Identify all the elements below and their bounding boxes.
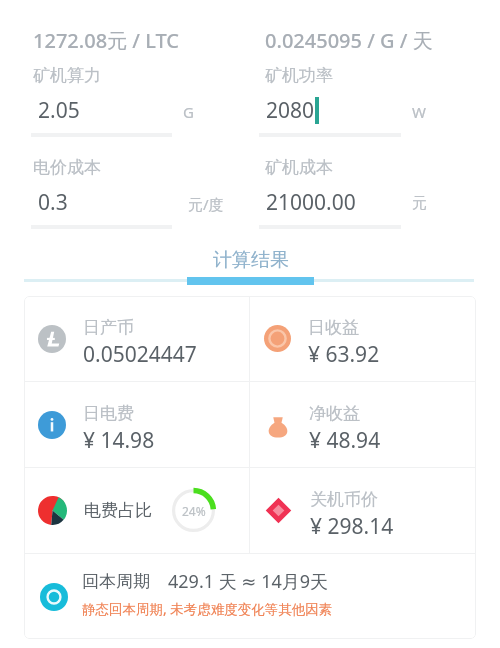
staticText: 429.1 天 ≈ 14月9天 (168, 569, 329, 594)
other: 电费占比 (38, 496, 67, 525)
button[interactable]: 回本周期 (24, 554, 476, 639)
staticText: 元/度 (188, 194, 224, 214)
staticText: ¥ 298.14 (310, 512, 394, 541)
staticText: 电费占比 (84, 500, 152, 521)
staticText: 0.3 (38, 188, 68, 217)
staticText: 0.0245095 / G / 天 (265, 27, 433, 54)
staticText: 计算结果 (213, 248, 289, 272)
other: 关机币价 (264, 496, 293, 525)
staticText: 24% (182, 503, 206, 519)
staticText: 矿机功率 (265, 65, 333, 86)
staticText: 电价成本 (33, 157, 101, 178)
staticText: ¥ 63.92 (308, 340, 380, 369)
staticText: 回本周期 (82, 571, 150, 592)
other: 日电费 (38, 411, 66, 439)
staticText: 关机币价 (310, 489, 378, 510)
staticText: 元 (412, 194, 427, 213)
other: 日收益 (264, 325, 291, 352)
staticText: 日电费 (83, 403, 134, 424)
staticText: 2.05 (38, 96, 80, 125)
staticText: 21000.00 (266, 188, 356, 217)
button[interactable]: 日收益 (250, 296, 476, 381)
staticText: 矿机算力 (33, 65, 101, 86)
staticText: 0.05024447 (83, 340, 197, 369)
staticText: ¥ 14.98 (83, 426, 155, 455)
staticText: G (183, 102, 194, 122)
staticText: 日收益 (308, 317, 359, 338)
staticText: 净收益 (309, 403, 360, 424)
button[interactable]: 关机币价 (250, 468, 476, 553)
other: 回本周期 (40, 583, 68, 611)
other: LTC (38, 325, 66, 353)
button[interactable]: LTC (24, 296, 249, 381)
staticText: W (412, 102, 426, 122)
button[interactable]: 电费占比 (24, 468, 249, 553)
staticText: 2080 (266, 96, 315, 125)
button[interactable]: 净收益 (250, 382, 476, 467)
staticText: 日产币 (83, 317, 134, 338)
staticText: 矿机成本 (265, 157, 333, 178)
staticText: ¥ 48.94 (309, 426, 381, 455)
staticText: 1272.08元 / LTC (33, 27, 179, 54)
staticText: 静态回本周期, 未考虑难度变化等其他因素 (82, 600, 333, 618)
other: 净收益 (264, 411, 292, 439)
button[interactable]: 日电费 (24, 382, 249, 467)
